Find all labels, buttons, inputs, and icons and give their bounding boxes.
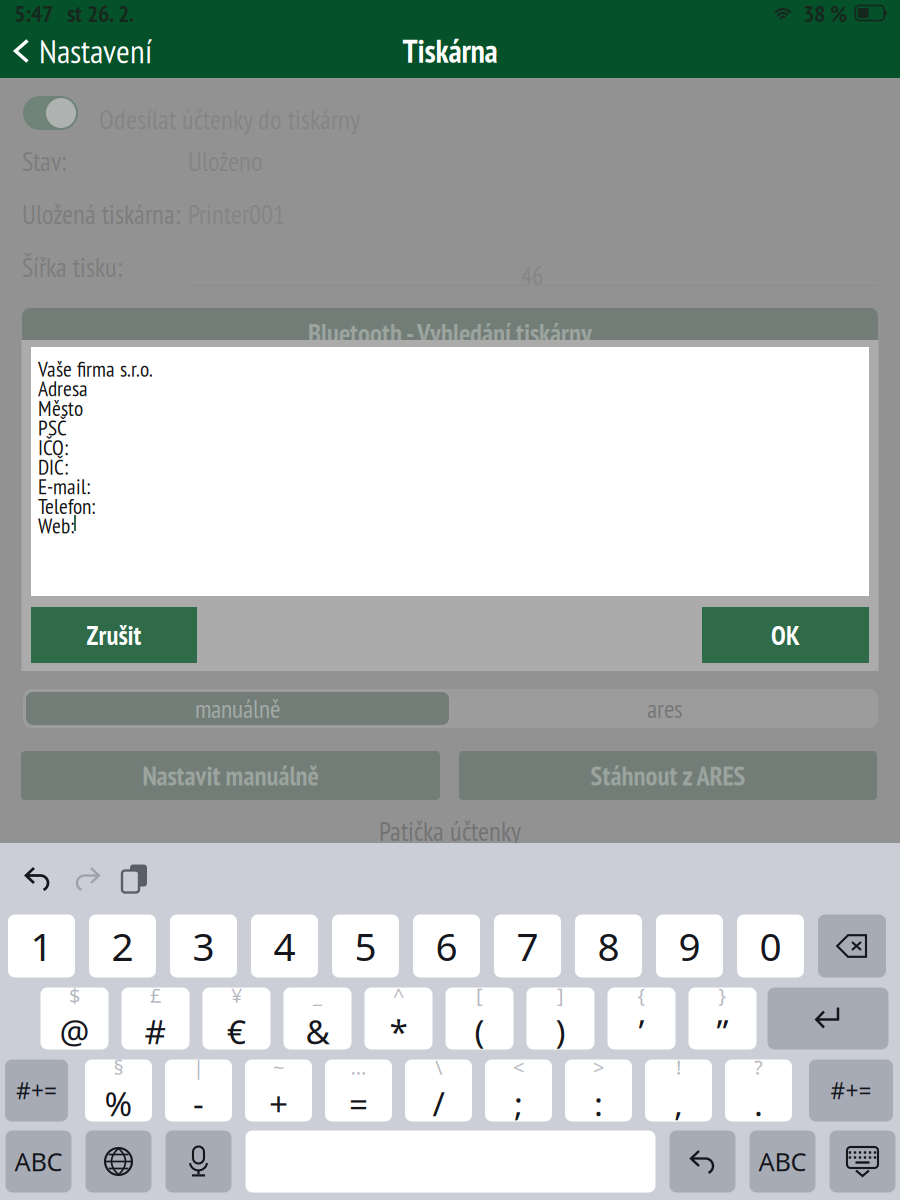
- staticText: Uložená tiskárna:: [22, 197, 180, 231]
- staticText: (: [474, 1009, 484, 1053]
- button[interactable]: Zrušit: [31, 607, 197, 663]
- staticText: Printer001: [188, 197, 285, 231]
- button[interactable]: Stáhnout z ARES: [459, 751, 877, 800]
- button[interactable]: ?: [725, 1059, 792, 1121]
- staticText: Stav:: [22, 144, 66, 178]
- staticText: §: [113, 1054, 123, 1080]
- button[interactable]: #+=: [809, 1059, 893, 1121]
- button[interactable]: 4: [251, 914, 318, 977]
- button[interactable]: \: [405, 1059, 472, 1121]
- staticText: /: [432, 1081, 444, 1125]
- staticText: ’: [638, 1009, 644, 1053]
- staticText: 2: [111, 920, 133, 972]
- button[interactable]: ~: [245, 1059, 312, 1121]
- staticText: .: [754, 1081, 763, 1125]
- button[interactable]: <: [485, 1059, 552, 1121]
- staticText: +: [269, 1081, 288, 1125]
- staticText: 4: [273, 920, 295, 972]
- staticText: ~: [273, 1054, 284, 1080]
- button[interactable]: >: [565, 1059, 632, 1121]
- staticText: Nastavení: [39, 29, 152, 72]
- staticText: ^: [393, 982, 404, 1008]
- button[interactable]: Bluetooth - Vyhledání tiskárny: [22, 308, 878, 358]
- staticText: ABC: [758, 1145, 806, 1178]
- button[interactable]: 6: [413, 914, 480, 977]
- button[interactable]: OK: [702, 607, 869, 663]
- staticText: 5: [354, 920, 376, 972]
- staticText: -: [193, 1081, 204, 1125]
- staticText: \: [435, 1054, 442, 1080]
- staticText: Nastavit manuálně: [142, 758, 318, 793]
- staticText: ): [555, 1009, 565, 1053]
- button[interactable]: 9: [656, 914, 723, 977]
- button[interactable]: ABC: [5, 1130, 71, 1192]
- staticText: *: [389, 1009, 407, 1053]
- staticText: >: [593, 1054, 604, 1080]
- staticText: 9: [678, 920, 700, 972]
- staticText: 3: [192, 920, 214, 972]
- button[interactable]: $: [40, 987, 108, 1049]
- staticText: Šířka tisku:: [22, 250, 122, 284]
- button[interactable]: 7: [494, 914, 561, 977]
- button[interactable]: Space: [245, 1130, 655, 1192]
- staticText: 38 %: [803, 0, 847, 29]
- staticText: 46: [521, 259, 543, 292]
- staticText: :: [594, 1081, 603, 1125]
- button[interactable]: 2: [89, 914, 156, 977]
- button[interactable]: ^: [364, 987, 432, 1049]
- button[interactable]: Undo: [669, 1130, 735, 1192]
- button[interactable]: |: [165, 1059, 232, 1121]
- button[interactable]: 5: [332, 914, 399, 977]
- staticText: |: [193, 1054, 204, 1080]
- button[interactable]: }: [688, 987, 756, 1049]
- button[interactable]: #+=: [5, 1059, 68, 1121]
- staticText: Vaše firma s.r.o. Adresa Město PSČ IČO: …: [38, 355, 153, 539]
- staticText: Zrušit: [86, 618, 141, 652]
- button[interactable]: §: [85, 1059, 152, 1121]
- button[interactable]: [: [445, 987, 513, 1049]
- button[interactable]: 3: [170, 914, 237, 977]
- button[interactable]: Nastavit manuálně: [21, 751, 440, 800]
- staticText: Stáhnout z ARES: [590, 758, 745, 793]
- button[interactable]: ¥: [202, 987, 270, 1049]
- button[interactable]: Paste: [122, 864, 147, 892]
- button[interactable]: Odesílat účtenky do tiskárny: [23, 96, 78, 130]
- staticText: {: [637, 982, 645, 1008]
- button[interactable]: 8: [575, 914, 642, 977]
- button[interactable]: Redo: [74, 865, 101, 891]
- staticText: €: [227, 1009, 246, 1053]
- staticText: Patička účtenky: [379, 814, 521, 848]
- button[interactable]: Next keyboard: [85, 1130, 151, 1192]
- button[interactable]: ares: [455, 692, 875, 725]
- staticText: ¥: [231, 982, 242, 1008]
- staticText: !: [676, 1054, 681, 1080]
- staticText: }: [718, 982, 726, 1008]
- staticText: <: [513, 1054, 524, 1080]
- staticText: Uloženo: [188, 144, 263, 178]
- staticText: ares: [647, 692, 683, 725]
- staticText: _: [313, 982, 322, 1008]
- staticText: #+=: [16, 1075, 57, 1105]
- staticText: ”: [716, 1009, 728, 1053]
- button[interactable]: …: [325, 1059, 392, 1121]
- button[interactable]: Undo: [24, 865, 51, 891]
- button[interactable]: Delete: [818, 914, 886, 977]
- button[interactable]: ]: [526, 987, 594, 1049]
- button[interactable]: 1: [8, 914, 75, 977]
- button[interactable]: ABC: [749, 1130, 815, 1192]
- button[interactable]: manuálně: [26, 692, 449, 725]
- button[interactable]: Dictation: [165, 1130, 231, 1192]
- button[interactable]: Return: [767, 987, 888, 1049]
- staticText: 5:47: [14, 0, 53, 29]
- button[interactable]: Nastavení: [0, 26, 168, 76]
- staticText: =: [349, 1081, 368, 1125]
- button[interactable]: £: [121, 987, 189, 1049]
- button[interactable]: !: [645, 1059, 712, 1121]
- staticText: …: [350, 1054, 366, 1080]
- button[interactable]: 0: [737, 914, 804, 977]
- staticText: manuálně: [195, 692, 280, 725]
- button[interactable]: _: [283, 987, 351, 1049]
- staticText: Odesílat účtenky do tiskárny: [99, 102, 360, 136]
- button[interactable]: {: [607, 987, 675, 1049]
- button[interactable]: Hide keyboard: [829, 1130, 895, 1192]
